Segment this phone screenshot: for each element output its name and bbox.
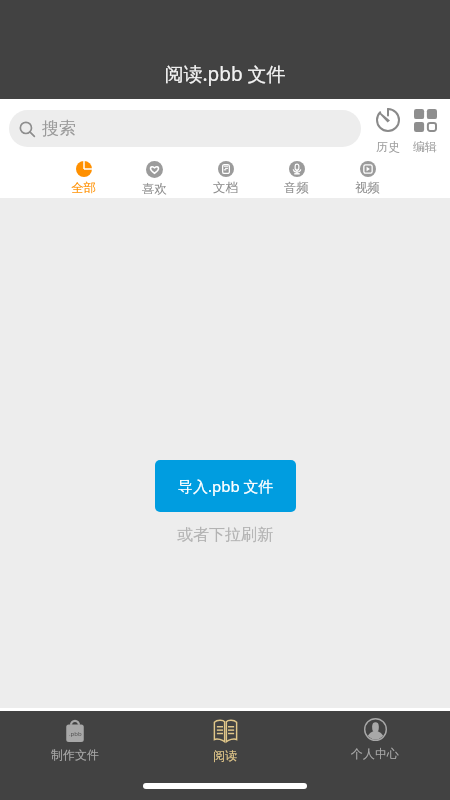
button[interactable]: 阅读 [150,711,300,763]
button[interactable]: 个人中心 [300,711,450,761]
staticText: 制作文件 [51,747,99,762]
button[interactable]: 导入.pbb 文件 [155,460,296,512]
button[interactable]: 喜欢 [119,155,190,197]
button[interactable]: Edit [412,99,438,154]
staticText: 喜欢 [142,181,167,197]
button[interactable]: 全部 [48,155,119,196]
staticText: 音频 [284,180,309,196]
staticText: 导入.pbb 文件 [178,476,274,496]
staticText: 阅读.pbb 文件 [0,61,450,87]
staticText: 阅读 [213,748,237,763]
staticText: 或者下拉刷新 [177,525,273,545]
staticText: 个人中心 [351,746,399,761]
staticText: 全部 [71,180,96,196]
staticText: 视频 [355,180,380,196]
button[interactable]: 视频 [332,155,403,196]
button[interactable]: .pbb [0,711,150,762]
button[interactable]: 音频 [261,155,332,196]
button[interactable]: 搜索 [9,110,361,147]
button[interactable]: 文档 [190,155,261,196]
staticText: .pbb [69,730,82,738]
staticText: 搜索 [42,118,76,139]
staticText: 文档 [213,180,238,196]
button[interactable]: History [375,99,401,154]
staticText: 历史 [376,139,400,154]
staticText: 编辑 [413,139,437,154]
